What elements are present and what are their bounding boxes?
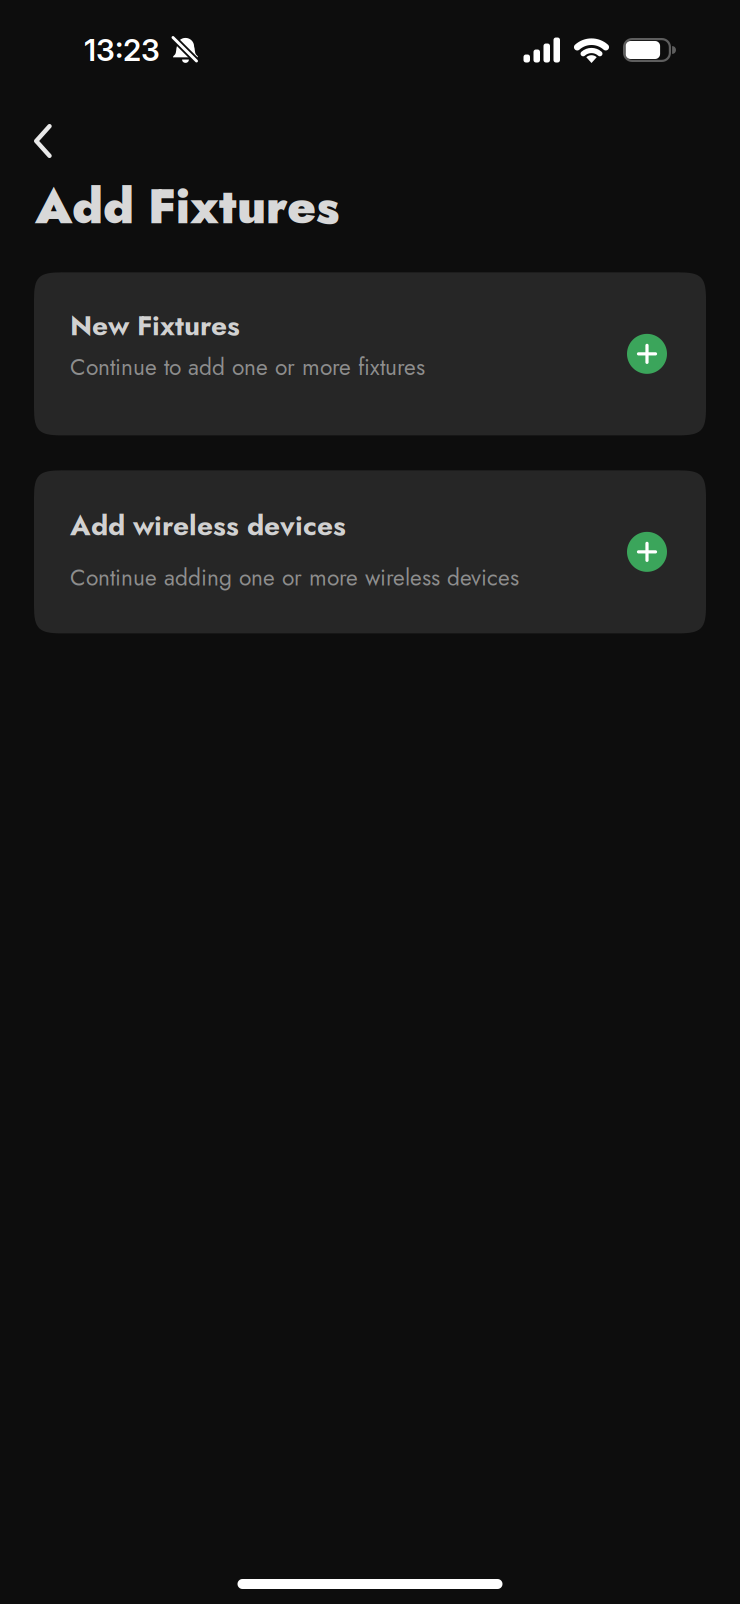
staticText: 13:23 [84, 32, 160, 68]
button[interactable]: New Fixtures [34, 272, 706, 435]
staticText: New Fixtures [70, 305, 240, 346]
button[interactable]: Add wireless devices [34, 470, 706, 633]
staticText: Continue adding one or more wireless dev… [70, 561, 519, 594]
staticText: Add wireless devices [70, 505, 346, 546]
staticText: Add Fixtures [35, 172, 339, 241]
button[interactable]: Back [21, 119, 65, 163]
staticText: Continue to add one or more fixtures [70, 351, 425, 384]
